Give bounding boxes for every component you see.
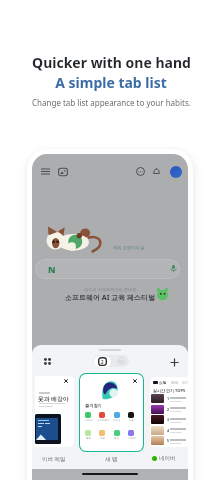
staticText: 네이버	[85, 419, 93, 422]
button[interactable]: 멜론	[85, 430, 91, 436]
button[interactable]: Close tab	[133, 379, 137, 383]
button[interactable]: Notifications	[152, 167, 161, 176]
staticText: 인기글	[182, 380, 188, 385]
staticText: 네이버	[159, 455, 176, 462]
button[interactable]: 다음	[128, 412, 134, 418]
button[interactable]: Profile	[170, 166, 182, 178]
staticText: 지마켓	[128, 437, 136, 440]
button[interactable]: Close tab	[64, 379, 68, 383]
staticText: 쇼핑	[159, 380, 167, 385]
button[interactable]: N	[35, 259, 180, 279]
staticText: 소프트웨어	[97, 419, 109, 422]
staticText: 3	[167, 417, 170, 422]
staticText: N	[48, 263, 56, 275]
staticText: 소프트웨어 AI 교육 페스티벌	[65, 293, 156, 303]
button[interactable]: Open tabs: 2	[94, 356, 111, 367]
staticText: 랭킹	[171, 380, 179, 385]
button[interactable]: Tab groups	[44, 358, 51, 365]
staticText: 2	[167, 407, 170, 412]
staticText: 이버 메일	[42, 455, 66, 463]
staticText: 새 탭	[105, 455, 118, 463]
button[interactable]: 카카오	[114, 412, 120, 418]
button[interactable]: Menu	[41, 167, 50, 176]
staticText: 다음	[129, 419, 134, 422]
staticText: 실시간 인기 TOP5	[153, 388, 186, 393]
staticText: 4	[167, 428, 170, 433]
staticText: 멜론	[86, 437, 91, 440]
button[interactable]: 웃과 배강아	[35, 376, 74, 447]
button[interactable]: 쇼핑	[150, 377, 188, 447]
button[interactable]: New tab	[170, 358, 179, 367]
staticText: Change tab list appearance to your habit…	[32, 97, 191, 108]
button[interactable]: 소프트웨어	[99, 412, 105, 418]
button[interactable]: Incognito tabs	[112, 355, 129, 367]
staticText: 1	[167, 396, 170, 401]
staticText: Quicker with one hand	[32, 53, 191, 72]
button[interactable]: 배민	[114, 430, 120, 436]
staticText: 즐겨찾기	[85, 403, 102, 408]
staticText: A simple tab list	[55, 73, 167, 92]
staticText: 세계 고양이의 날	[113, 245, 145, 251]
staticText: 5	[167, 438, 170, 443]
button[interactable]: 지마켓	[128, 430, 134, 436]
staticText: 2	[101, 359, 104, 365]
staticText: 네이버 커넥트재단이 준비한	[84, 287, 137, 293]
staticText: 배민	[114, 437, 119, 440]
staticText: 쿠팡	[100, 437, 105, 440]
staticText: 웃과 배강아	[38, 395, 69, 403]
button[interactable]: 쿠팡	[99, 430, 105, 436]
staticText: 카카오	[113, 419, 121, 422]
button[interactable]: 네이버	[85, 412, 91, 418]
button[interactable]: Gallery	[58, 167, 68, 177]
button[interactable]: Chat	[136, 167, 145, 176]
button[interactable]: 즐겨찾기	[80, 374, 143, 451]
